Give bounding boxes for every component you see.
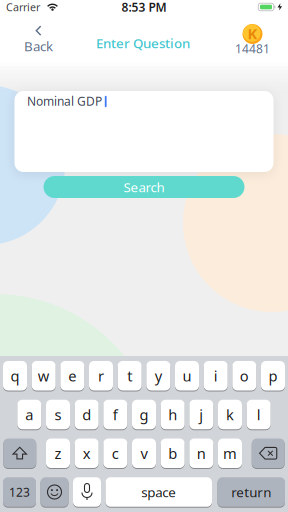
button[interactable]: j xyxy=(189,399,213,430)
button[interactable]: w xyxy=(32,360,56,391)
staticText: c xyxy=(112,443,119,463)
staticText: Back xyxy=(24,37,53,55)
button[interactable]: h xyxy=(161,399,185,430)
staticText: 14481 xyxy=(235,40,270,56)
staticText: w xyxy=(38,366,50,385)
staticText: k xyxy=(226,405,234,424)
button[interactable]: f xyxy=(103,399,127,430)
staticText: f xyxy=(113,405,118,424)
button[interactable]: Delete xyxy=(252,438,285,468)
button[interactable]: a xyxy=(17,399,41,430)
staticText: Enter Question xyxy=(96,34,190,52)
staticText: h xyxy=(168,405,177,424)
staticText: r xyxy=(98,366,104,385)
button[interactable]: k xyxy=(218,399,242,430)
button[interactable]: 123 xyxy=(3,477,36,507)
button[interactable]: t xyxy=(118,360,142,391)
staticText: q xyxy=(10,366,19,385)
staticText: y xyxy=(155,366,162,385)
staticText: x xyxy=(83,443,91,463)
staticText: t xyxy=(127,366,132,385)
staticText: 123 xyxy=(9,484,30,500)
button[interactable]: p xyxy=(261,360,285,391)
button[interactable]: Dictate xyxy=(73,477,101,507)
button[interactable]: v xyxy=(132,438,156,468)
button[interactable]: q xyxy=(3,360,27,391)
staticText: K xyxy=(247,24,257,43)
button[interactable]: Search xyxy=(43,176,244,198)
staticText: l xyxy=(257,405,261,424)
staticText: m xyxy=(223,443,237,463)
staticText: j xyxy=(199,405,203,424)
button[interactable]: space xyxy=(105,477,212,507)
button[interactable]: i xyxy=(204,360,228,391)
button[interactable]: z xyxy=(46,438,70,468)
staticText: i xyxy=(214,366,218,385)
staticText: g xyxy=(139,405,148,424)
staticText: o xyxy=(240,366,249,385)
button[interactable]: Shift xyxy=(3,438,36,468)
staticText: a xyxy=(25,405,33,424)
staticText: s xyxy=(54,405,61,424)
button[interactable]: c xyxy=(103,438,127,468)
staticText: n xyxy=(197,443,206,463)
button[interactable]: n xyxy=(189,438,213,468)
staticText: p xyxy=(268,366,277,385)
staticText: e xyxy=(68,366,76,385)
button[interactable]: g xyxy=(132,399,156,430)
button[interactable]: x xyxy=(75,438,99,468)
staticText: b xyxy=(168,443,177,463)
button[interactable]: b xyxy=(161,438,185,468)
staticText: v xyxy=(140,443,147,463)
staticText: Carrier xyxy=(6,0,40,14)
button[interactable]: return xyxy=(217,477,285,507)
button[interactable]: Back xyxy=(16,26,60,54)
button[interactable]: r xyxy=(89,360,113,391)
button[interactable]: d xyxy=(75,399,99,430)
button[interactable]: m xyxy=(218,438,242,468)
button[interactable]: o xyxy=(232,360,256,391)
staticText: space xyxy=(141,483,176,501)
staticText: d xyxy=(82,405,91,424)
button[interactable]: Question text field: Nominal GDP xyxy=(14,91,273,172)
button[interactable]: l xyxy=(247,399,271,430)
button[interactable]: s xyxy=(46,399,70,430)
staticText: return xyxy=(231,483,271,501)
staticText: Nominal GDP xyxy=(27,93,102,109)
staticText: z xyxy=(54,443,61,463)
button[interactable]: e xyxy=(60,360,84,391)
button[interactable]: Emoji xyxy=(40,477,68,507)
button[interactable]: Coins 14481 xyxy=(230,21,274,59)
staticText: Search xyxy=(123,178,164,196)
button[interactable]: u xyxy=(175,360,199,391)
button[interactable]: y xyxy=(146,360,170,391)
staticText: u xyxy=(182,366,191,385)
staticText: 8:53 PM xyxy=(121,0,166,15)
